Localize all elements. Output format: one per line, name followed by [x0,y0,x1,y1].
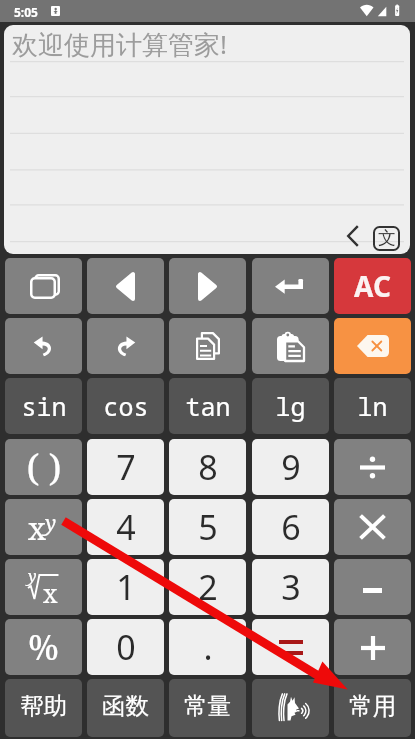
staticText: AC [354,267,391,305]
staticText: % [28,624,59,670]
button[interactable]: ln [334,378,411,434]
button[interactable]: Voice input [252,679,329,737]
button[interactable]: 0 [87,619,164,675]
staticText: x [28,507,46,549]
button[interactable]: % [5,619,82,675]
button[interactable]: 帮助 [5,679,82,737]
button[interactable]: 5 [169,499,246,555]
button[interactable]: 9 [252,439,329,495]
staticText: 帮助 [20,691,67,721]
staticText: 0 [116,624,136,670]
staticText: sin [21,389,67,423]
staticText: 4 [116,504,136,550]
staticText: y [45,509,57,538]
button[interactable]: Undo [5,318,82,374]
button[interactable]: Back [340,221,366,251]
button[interactable]: Redo [87,318,164,374]
button[interactable]: 函数 [87,679,164,737]
button[interactable]: y-th root of x [5,559,82,615]
button[interactable]: ( ) [5,439,82,495]
staticText: ln [357,389,388,423]
staticText: tan [185,389,231,423]
button[interactable]: Window [5,258,82,314]
button[interactable]: 常用 [334,679,411,737]
button[interactable]: Enter [252,258,329,314]
staticText: 1 [116,564,136,610]
staticText: x [43,576,58,607]
staticText: 欢迎使用计算管家! [12,26,227,62]
staticText: 8 [198,444,218,490]
button[interactable]: 4 [87,499,164,555]
button[interactable]: cos [87,378,164,434]
staticText: . [203,624,213,670]
staticText: cos [103,389,149,423]
button[interactable]: 6 [252,499,329,555]
button[interactable]: Move left [87,258,164,314]
staticText: 函数 [102,691,149,721]
button[interactable]: . [169,619,246,675]
button[interactable]: x to the power of y [5,499,82,555]
button[interactable]: tan [169,378,246,434]
button[interactable]: lg [252,378,329,434]
button[interactable]: Divide [334,439,411,495]
button[interactable]: 2 [169,559,246,615]
button[interactable]: 8 [169,439,246,495]
button[interactable]: 1 [87,559,164,615]
staticText: 5:05 [14,4,38,20]
staticText: 文 [378,227,396,250]
staticText: 常量 [184,691,231,721]
staticText: 3 [281,564,301,610]
staticText: 9 [281,444,301,490]
staticText: 2 [198,564,218,610]
staticText: 5 [198,504,218,550]
staticText: lg [275,389,306,423]
button[interactable]: Multiply [334,499,411,555]
staticText: 7 [116,444,136,490]
button[interactable]: Copy [169,318,246,374]
staticText: 常用 [349,691,396,721]
button[interactable]: Language [373,226,400,251]
button[interactable]: 常量 [169,679,246,737]
button[interactable]: Paste [252,318,329,374]
button[interactable]: Add [334,619,411,675]
button[interactable]: Equals [252,619,329,675]
button[interactable]: sin [5,378,82,434]
button[interactable]: 7 [87,439,164,495]
staticText: 6 [281,504,301,550]
button[interactable]: Subtract [334,559,411,615]
button[interactable]: Move right [169,258,246,314]
staticText: ( ) [26,441,62,491]
button[interactable]: 3 [252,559,329,615]
button[interactable]: AC [334,258,411,314]
button[interactable]: Backspace [334,318,411,374]
staticText: y [28,565,37,587]
